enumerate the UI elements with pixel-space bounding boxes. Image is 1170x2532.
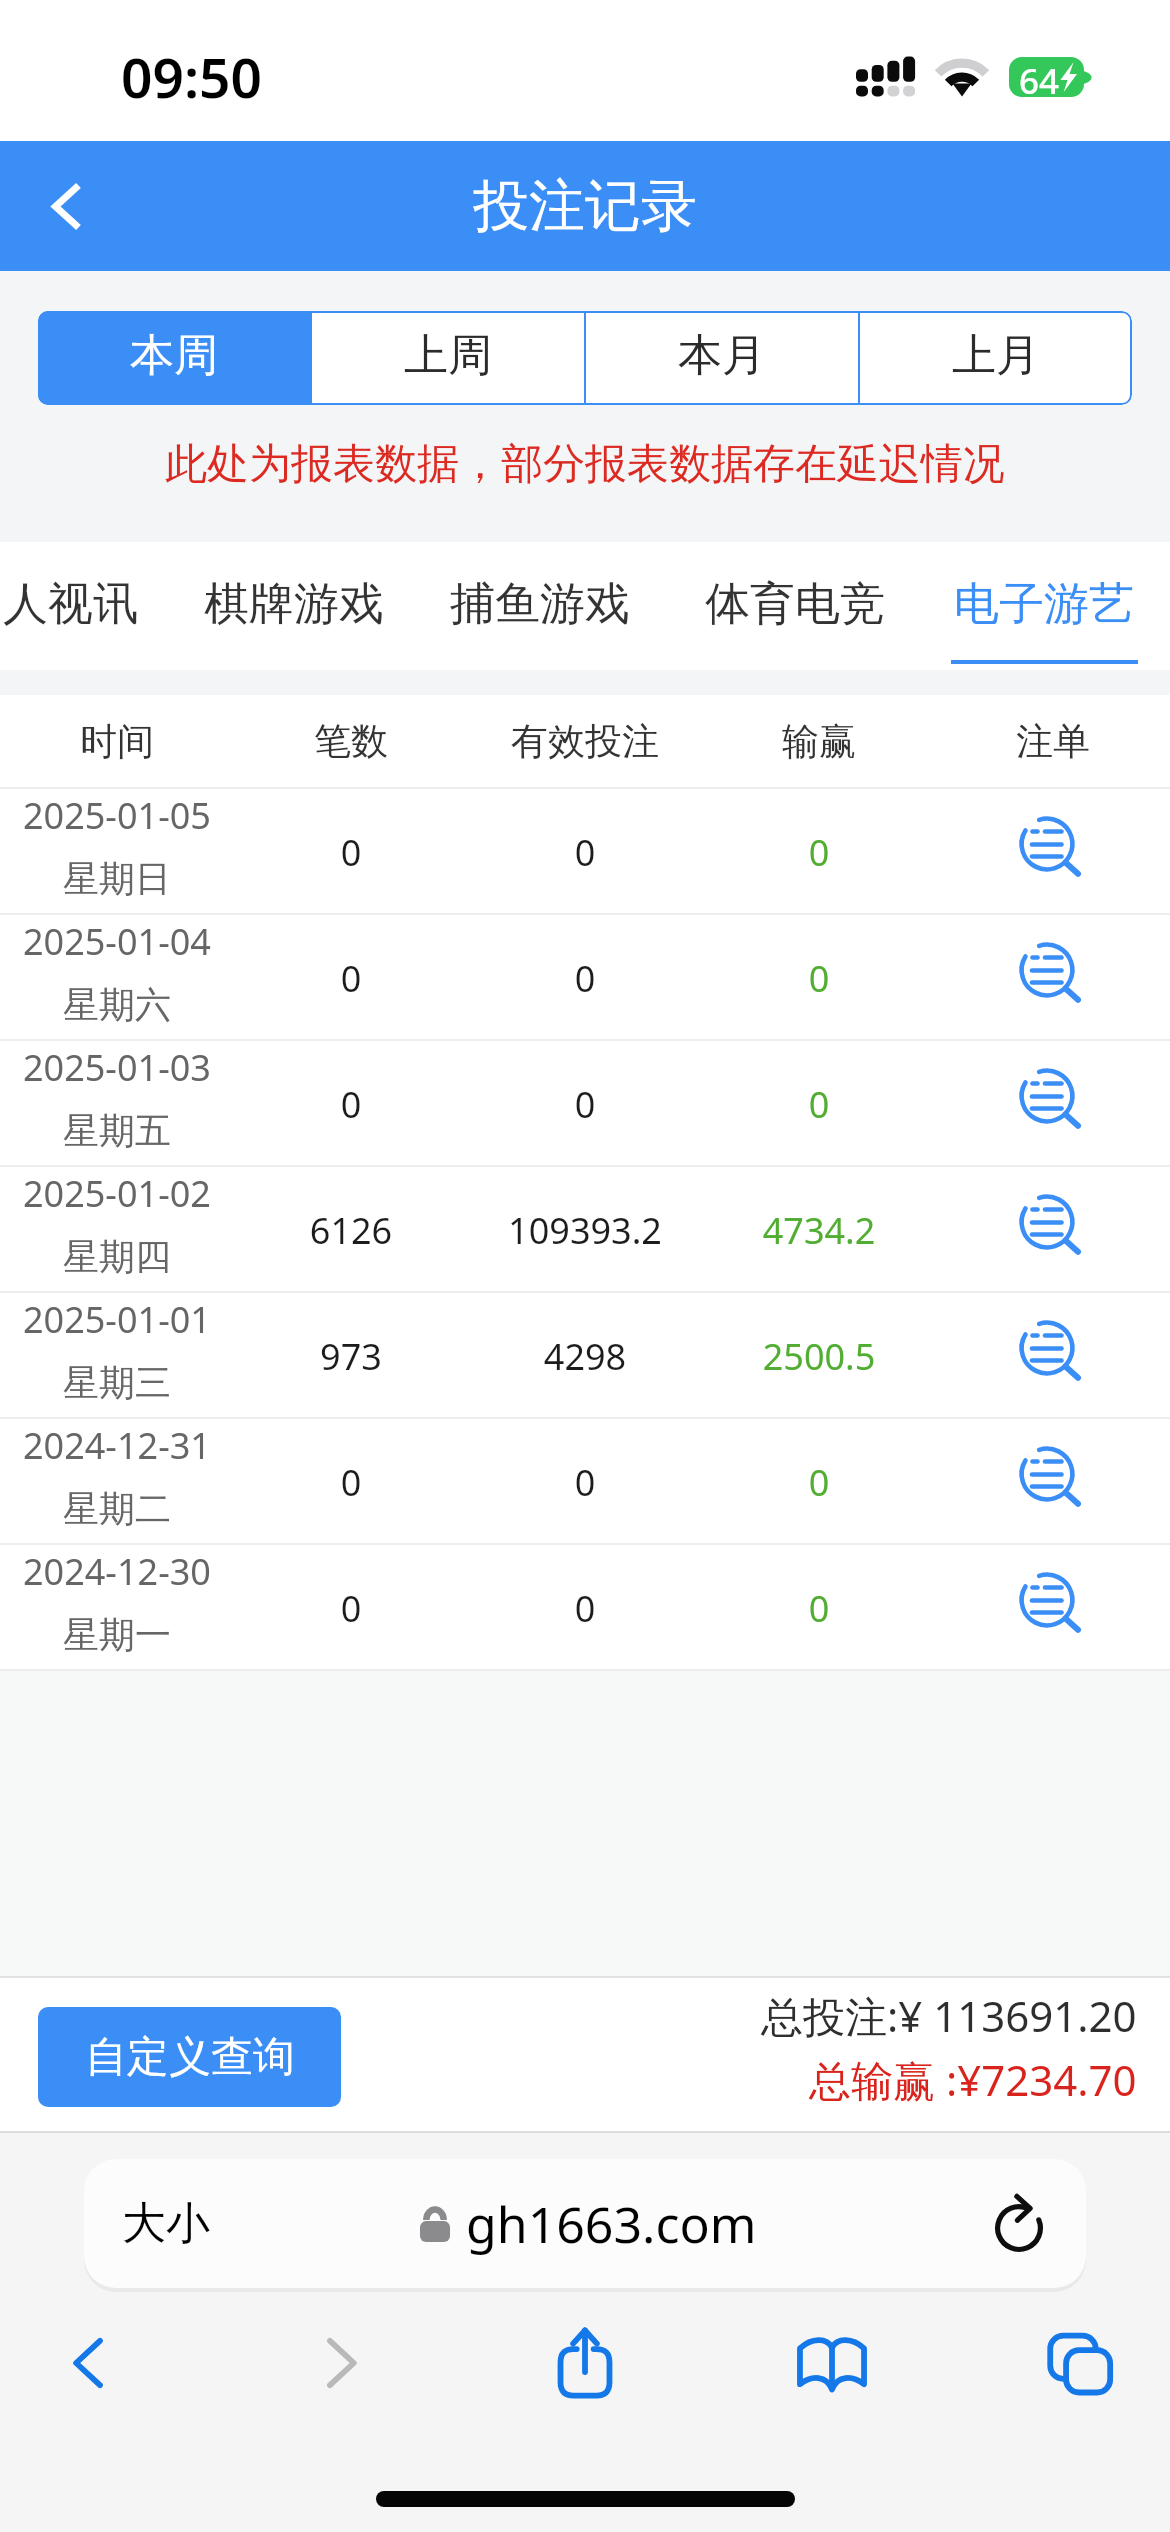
staticText: 6126 [234, 1206, 468, 1255]
staticText: 大小 [122, 2196, 210, 2251]
staticText: 本周 [130, 328, 218, 383]
staticText: 星期日 [63, 856, 171, 901]
staticText: 电子游艺 [954, 576, 1134, 633]
button[interactable]: 标签页 [1013, 2303, 1133, 2423]
staticText: 0 [234, 1458, 468, 1507]
staticText: 输赢 [702, 718, 936, 765]
button[interactable]: 本月 [586, 311, 858, 405]
button[interactable]: 捕鱼游戏 [435, 542, 645, 670]
staticText: 0 [468, 1080, 702, 1129]
staticText: 4298 [468, 1332, 702, 1381]
staticText: 2025-01-05 [23, 791, 211, 840]
button[interactable]: 后退 [26, 2303, 146, 2423]
staticText: 0 [468, 954, 702, 1003]
staticText: 总投注:¥ 113691.20 [761, 1987, 1137, 2044]
staticText: 总输赢 :¥7234.70 [809, 2051, 1137, 2108]
staticText: 0 [234, 954, 468, 1003]
staticText: 2025-01-01 [23, 1295, 211, 1344]
staticText: 0 [468, 1458, 702, 1507]
staticText: 此处为报表数据，部分报表数据存在延迟情况 [165, 438, 1005, 491]
staticText: 有效投注 [468, 718, 702, 765]
staticText: 09:50 [121, 39, 263, 114]
staticText: 2024-12-31 [23, 1421, 211, 1470]
button[interactable]: 查看注单 [993, 1167, 1113, 1293]
staticText: 体育电竞 [705, 576, 885, 633]
staticText: 0 [702, 828, 936, 877]
staticText: 星期五 [63, 1108, 171, 1153]
staticText: 2025-01-02 [23, 1169, 211, 1218]
staticText: 2500.5 [702, 1332, 936, 1381]
button[interactable]: 查看注单 [993, 915, 1113, 1041]
button[interactable]: 查看注单 [993, 1041, 1113, 1167]
staticText: 0 [234, 828, 468, 877]
staticText: 0 [702, 1458, 936, 1507]
staticText: 973 [234, 1332, 468, 1381]
button[interactable]: 查看注单 [993, 1545, 1113, 1671]
staticText: 2024-12-30 [23, 1547, 211, 1596]
button[interactable]: 人视讯 [0, 542, 175, 670]
staticText: 人视讯 [3, 576, 138, 633]
staticText: 投注记录 [473, 171, 697, 242]
button[interactable]: 体育电竞 [690, 542, 900, 670]
staticText: 捕鱼游戏 [450, 576, 630, 633]
button[interactable]: 大小 [84, 2159, 1086, 2288]
button[interactable]: 查看注单 [993, 789, 1113, 915]
button[interactable]: 本周 [38, 311, 310, 405]
button[interactable]: 查看注单 [993, 1293, 1113, 1419]
button[interactable]: 自定义查询 [38, 2007, 341, 2107]
staticText: 注单 [936, 718, 1170, 765]
staticText: 2025-01-03 [23, 1043, 211, 1092]
staticText: 0 [234, 1584, 468, 1633]
button[interactable]: 前进 [283, 2303, 403, 2423]
staticText: gh1663.com [466, 2190, 757, 2258]
staticText: 星期六 [63, 982, 171, 1027]
staticText: 自定义查询 [85, 2031, 295, 2084]
staticText: 0 [702, 954, 936, 1003]
staticText: 64 [1019, 57, 1060, 97]
staticText: 星期四 [63, 1234, 171, 1279]
staticText: 0 [468, 828, 702, 877]
staticText: 0 [234, 1080, 468, 1129]
button[interactable]: 上周 [312, 311, 584, 405]
staticText: 109393.2 [468, 1206, 702, 1255]
staticText: 星期一 [63, 1612, 171, 1657]
staticText: 2025-01-04 [23, 917, 211, 966]
button[interactable]: 棋牌游戏 [189, 542, 399, 670]
button[interactable]: 分享 [525, 2303, 645, 2423]
staticText: 4734.2 [702, 1206, 936, 1255]
button[interactable]: 电子游艺 [939, 542, 1149, 670]
staticText: 上月 [952, 328, 1040, 383]
staticText: 笔数 [234, 718, 468, 765]
staticText: 星期三 [63, 1360, 171, 1405]
staticText: 棋牌游戏 [204, 576, 384, 633]
button[interactable]: 查看注单 [993, 1419, 1113, 1545]
staticText: 0 [702, 1080, 936, 1129]
staticText: 0 [468, 1584, 702, 1633]
button[interactable]: 书签 [772, 2303, 892, 2423]
staticText: 星期二 [63, 1486, 171, 1531]
staticText: 上周 [404, 328, 492, 383]
button[interactable]: 返回 [0, 141, 122, 271]
staticText: 时间 [0, 718, 234, 765]
staticText: 本月 [678, 328, 766, 383]
button[interactable]: 上月 [860, 311, 1132, 405]
staticText: 0 [702, 1584, 936, 1633]
